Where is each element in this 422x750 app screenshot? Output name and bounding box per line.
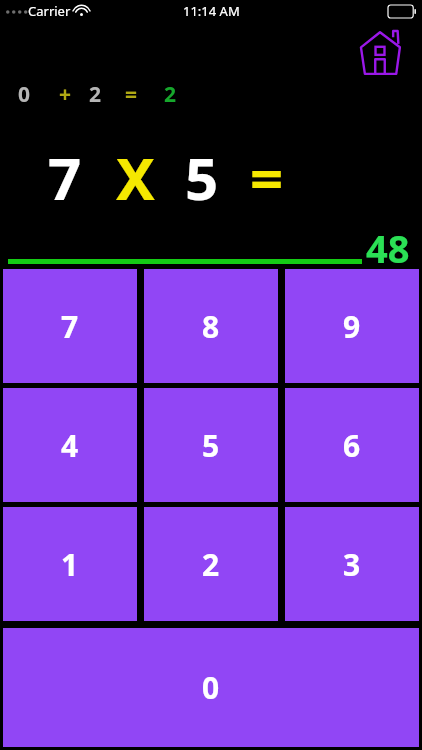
staticText: +	[59, 80, 72, 109]
button[interactable]: 8	[144, 269, 278, 383]
staticText: 11:14 AM	[183, 2, 240, 20]
button[interactable]: 2	[144, 507, 278, 621]
button[interactable]: 7	[3, 269, 137, 383]
staticText: 5	[202, 425, 220, 466]
staticText: 8	[202, 306, 220, 347]
staticText: 48	[366, 222, 410, 274]
staticText: 9	[343, 306, 361, 347]
staticText: 1	[61, 544, 79, 585]
staticText: Carrier	[28, 2, 71, 20]
button[interactable]: 9	[285, 269, 419, 383]
button[interactable]: 4	[3, 388, 137, 502]
staticText: 5	[185, 138, 219, 217]
button[interactable]: Home	[352, 26, 408, 78]
staticText: 7	[61, 306, 79, 347]
staticText: 6	[343, 425, 361, 466]
staticText: =	[125, 80, 138, 109]
button[interactable]: 5	[144, 388, 278, 502]
staticText: 0	[18, 80, 31, 109]
button[interactable]: 3	[285, 507, 419, 621]
button[interactable]: 6	[285, 388, 419, 502]
staticText: 0	[202, 667, 220, 708]
staticText: 7	[48, 138, 82, 217]
staticText: 2	[202, 544, 220, 585]
staticText: 2	[89, 80, 102, 109]
button[interactable]: 0	[3, 628, 419, 747]
staticText: 3	[343, 544, 361, 585]
button[interactable]: 1	[3, 507, 137, 621]
staticText: =	[250, 138, 284, 217]
staticText: 2	[164, 80, 177, 109]
staticText: 4	[61, 425, 79, 466]
staticText: X	[116, 138, 155, 217]
